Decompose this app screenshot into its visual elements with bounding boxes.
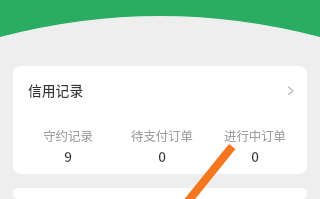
staticText: 信用记录 bbox=[28, 80, 84, 100]
button[interactable]: 待支付订单 bbox=[115, 111, 208, 166]
staticText: 待支付订单 bbox=[131, 127, 193, 145]
button[interactable]: 守约记录 bbox=[21, 111, 115, 166]
staticText: 守约记录 bbox=[43, 127, 93, 145]
button[interactable]: 信用记录 bbox=[13, 66, 307, 111]
staticText: 进行中订单 bbox=[224, 127, 286, 145]
other: 查看信用记录 bbox=[283, 82, 297, 96]
button[interactable]: 进行中订单 bbox=[208, 111, 301, 166]
staticText: 9 bbox=[64, 146, 72, 166]
staticText: 0 bbox=[158, 146, 166, 166]
staticText: 0 bbox=[251, 146, 259, 166]
button[interactable] bbox=[13, 188, 307, 199]
